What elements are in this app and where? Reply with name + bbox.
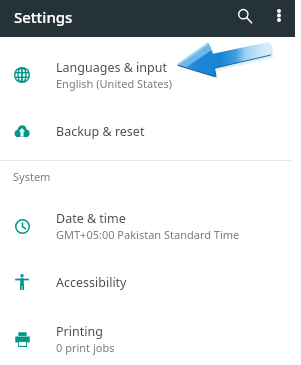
staticText: Languages & input	[56, 59, 167, 76]
staticText: Settings	[14, 7, 73, 27]
button[interactable]: Printing	[0, 313, 301, 365]
staticText: GMT+05:00 Pakistan Standard Time	[56, 227, 240, 242]
staticText: Date & time	[56, 210, 126, 227]
button[interactable]: Languages & input	[0, 49, 301, 101]
button[interactable]: Backup & reset	[0, 105, 301, 157]
staticText: English (United States)	[56, 76, 172, 91]
button[interactable]: Search	[230, 1, 260, 31]
staticText: Accessibility	[56, 274, 127, 291]
button[interactable]: Accessibility	[0, 256, 301, 308]
staticText: Backup & reset	[56, 123, 145, 140]
button[interactable]: More options	[264, 1, 293, 30]
staticText: System	[13, 169, 51, 184]
button[interactable]: Date & time	[0, 200, 301, 252]
staticText: Printing	[56, 323, 103, 340]
staticText: 0 print jobs	[56, 340, 115, 355]
